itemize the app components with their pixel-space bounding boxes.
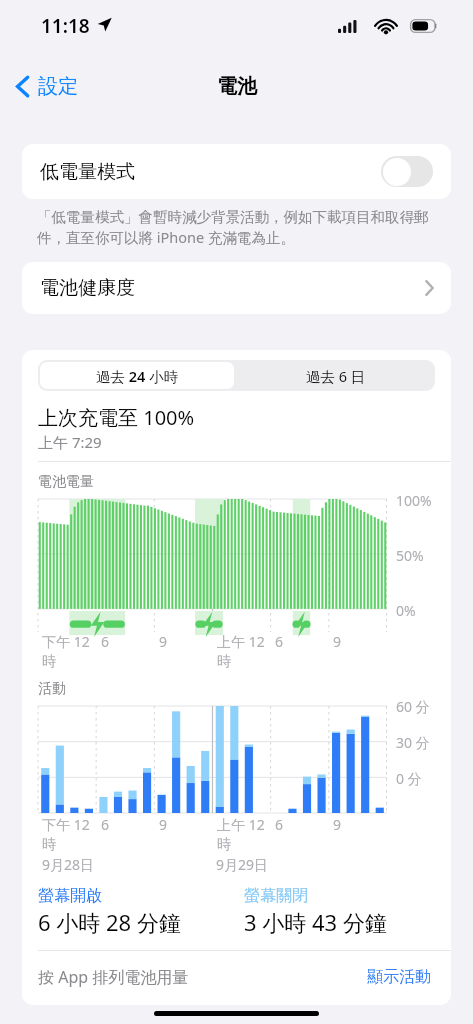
staticText: 50%: [396, 546, 424, 565]
button[interactable]: 低電量模式開關: [381, 156, 433, 187]
staticText: 6: [101, 815, 110, 834]
staticText: 螢幕關閉: [244, 886, 308, 906]
staticText: 6 小時 28 分鐘: [38, 907, 181, 937]
staticText: 9: [159, 632, 168, 651]
staticText: 0%: [396, 601, 416, 620]
staticText: 電池: [217, 74, 257, 99]
button[interactable]: 過去 6 日: [236, 360, 435, 391]
staticText: 設定: [38, 74, 78, 99]
button[interactable]: 顯示活動: [363, 963, 435, 991]
staticText: 0 分: [396, 769, 422, 788]
staticText: 9: [333, 815, 342, 834]
staticText: 螢幕開啟: [38, 886, 102, 906]
staticText: 「低電量模式」會暫時減少背景活動，例如下載項目和取得郵件，直至你可以將 iPho…: [37, 208, 436, 248]
staticText: 下午 12 時: [42, 815, 97, 853]
staticText: 上午 12 時: [217, 632, 271, 670]
button[interactable]: 設定: [8, 64, 86, 108]
staticText: 9: [333, 632, 342, 651]
staticText: 9月28日: [42, 855, 95, 874]
staticText: 上次充電至 100%: [38, 404, 195, 431]
button[interactable]: 電池健康度: [22, 262, 451, 314]
staticText: 3 小時 43 分鐘: [244, 907, 387, 937]
staticText: 過去 6 日: [306, 366, 366, 386]
staticText: 9: [159, 815, 168, 834]
staticText: 過去 24 小時: [96, 366, 179, 386]
staticText: 低電量模式: [40, 160, 135, 184]
staticText: 電池電量: [38, 473, 94, 491]
staticText: 顯示活動: [367, 967, 431, 987]
button[interactable]: 過去 24 小時: [40, 362, 234, 389]
staticText: 11:18: [41, 13, 90, 39]
staticText: 上午 12 時: [217, 815, 271, 853]
staticText: 6: [101, 632, 110, 651]
staticText: 下午 12 時: [42, 632, 97, 670]
staticText: 6: [275, 632, 284, 651]
staticText: 按 App 排列電池用量: [38, 966, 189, 988]
staticText: 9月29日: [216, 855, 269, 874]
staticText: 電池健康度: [40, 276, 135, 300]
staticText: 上午 7:29: [38, 432, 102, 452]
button[interactable]: 低電量模式: [22, 144, 451, 199]
staticText: 30 分: [396, 733, 430, 752]
staticText: 100%: [396, 491, 432, 510]
staticText: 6: [275, 815, 284, 834]
staticText: 60 分: [396, 697, 430, 716]
staticText: 活動: [38, 680, 66, 698]
